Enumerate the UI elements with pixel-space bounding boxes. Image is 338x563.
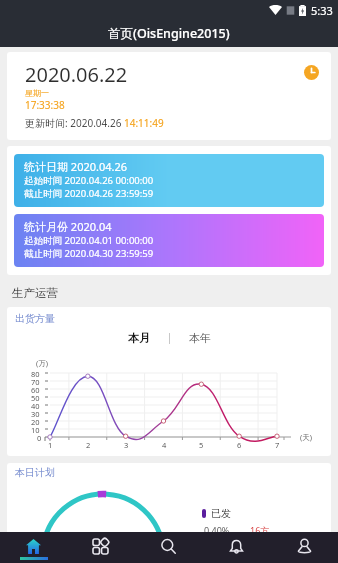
staticText: 本年 xyxy=(189,331,211,345)
staticText: 80 xyxy=(31,369,40,379)
staticText: 2020.06.22 xyxy=(25,61,128,88)
staticText: 14:11:49 xyxy=(124,116,164,130)
button[interactable]: Home xyxy=(0,532,67,563)
button[interactable]: Search xyxy=(134,532,202,563)
staticText: 30 xyxy=(31,409,40,419)
button[interactable]: Apps xyxy=(67,532,134,563)
staticText: 0 xyxy=(37,433,42,443)
button[interactable]: 2020.06.22 xyxy=(7,52,331,140)
button[interactable]: 统计月份 2020.04 xyxy=(14,214,324,267)
staticText: 20 xyxy=(31,417,40,427)
staticText: 10 xyxy=(31,425,40,435)
other: Clock xyxy=(304,65,319,80)
staticText: 统计月份 2020.04 xyxy=(24,219,112,234)
button[interactable]: 本年 xyxy=(170,329,219,347)
staticText: (万) xyxy=(36,358,48,368)
staticText: 5:33 xyxy=(311,3,333,18)
staticText: 70 xyxy=(31,377,40,387)
staticText: 50 xyxy=(31,393,40,403)
staticText: 40 xyxy=(31,401,40,411)
staticText: 本月 xyxy=(128,331,150,345)
staticText: 生产运营 xyxy=(12,286,58,300)
staticText: 已发 xyxy=(211,507,231,520)
staticText: 60 xyxy=(31,385,40,395)
staticText: 更新时间: 2020.04.26 xyxy=(25,116,124,130)
button[interactable]: 本月 xyxy=(120,329,169,347)
staticText: 起始时间 2020.04.01 00:00:00 xyxy=(24,234,154,247)
staticText: 本日计划 xyxy=(15,466,55,479)
staticText: 截止时间 2020.04.26 23:59:59 xyxy=(24,187,154,200)
staticText: 4 xyxy=(162,440,167,450)
staticText: 16方 xyxy=(250,524,270,536)
staticText: 1 xyxy=(48,440,53,450)
staticText: (天) xyxy=(300,432,312,442)
button[interactable]: 统计日期 2020.04.26 xyxy=(14,154,324,207)
button[interactable]: Profile xyxy=(270,532,338,563)
staticText: 0.40% xyxy=(204,524,230,536)
button[interactable]: Notifications xyxy=(202,532,270,563)
staticText: 统计日期 2020.04.26 xyxy=(24,159,128,174)
staticText: 7 xyxy=(275,440,280,450)
staticText: 星期一 xyxy=(25,88,49,98)
staticText: 17:33:38 xyxy=(25,98,65,112)
staticText: 起始时间 2020.04.26 00:00:00 xyxy=(24,174,154,187)
staticText: 2 xyxy=(86,440,91,450)
staticText: 首页(OisEngine2015) xyxy=(108,25,230,42)
staticText: 3 xyxy=(124,440,129,450)
staticText: 截止时间 2020.04.30 23:59:59 xyxy=(24,247,154,260)
staticText: 6 xyxy=(237,440,242,450)
staticText: 出货方量 xyxy=(15,312,55,325)
staticText: 5 xyxy=(199,440,204,450)
